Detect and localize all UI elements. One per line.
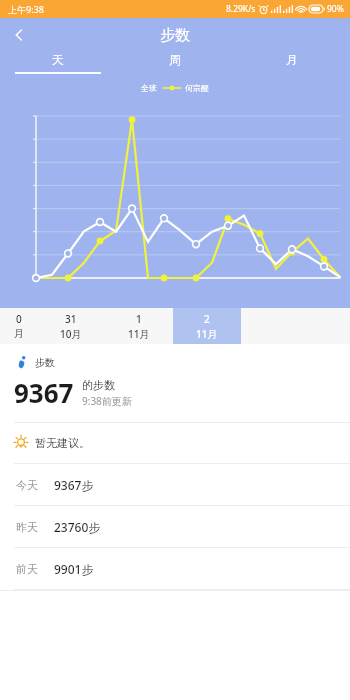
staticText: 月 — [14, 327, 24, 340]
staticText: 暂无建议。 — [35, 436, 90, 450]
button[interactable]: Back — [4, 20, 34, 50]
staticText: 周 — [169, 52, 181, 67]
button[interactable]: 前天 — [0, 548, 350, 589]
button[interactable]: 2 — [173, 308, 241, 344]
button[interactable]: 暂无建议。 — [0, 423, 350, 463]
staticText: 今天 — [16, 478, 38, 492]
staticText: 31 — [65, 312, 77, 326]
staticText: 2 — [204, 312, 210, 326]
staticText: 月 — [286, 52, 298, 67]
staticText: 前天 — [16, 562, 38, 576]
button[interactable]: 0 — [0, 308, 37, 344]
button[interactable]: 昨天 — [0, 506, 350, 547]
staticText: 上午9:38 — [8, 3, 44, 15]
button[interactable]: 1 — [105, 308, 173, 344]
staticText: 何宗醒 — [185, 83, 209, 93]
staticText: 步数 — [160, 26, 190, 45]
staticText: 9367 — [14, 375, 74, 410]
staticText: 全班 — [141, 83, 157, 93]
staticText: 8.29K/s — [226, 3, 256, 15]
staticText: 天 — [52, 52, 64, 67]
button[interactable]: 月 — [233, 52, 350, 74]
staticText: 的步数 — [82, 378, 115, 392]
staticText: 1 — [136, 312, 142, 326]
button[interactable]: 天 — [0, 52, 116, 74]
staticText: 9367步 — [54, 477, 94, 493]
staticText: 0 — [16, 312, 22, 326]
staticText: 步数 — [35, 356, 55, 369]
staticText: 10月 — [60, 327, 82, 341]
staticText: 昨天 — [16, 520, 38, 534]
staticText: 9:38前更新 — [82, 394, 132, 408]
button[interactable]: 周 — [116, 52, 233, 74]
staticText: 90% — [327, 3, 344, 15]
staticText: 9901步 — [54, 561, 94, 577]
staticText: 11月 — [128, 327, 150, 341]
staticText: 11月 — [196, 327, 218, 341]
button[interactable]: 31 — [37, 308, 105, 344]
button[interactable]: 今天 — [0, 464, 350, 505]
staticText: 23760步 — [54, 519, 101, 535]
